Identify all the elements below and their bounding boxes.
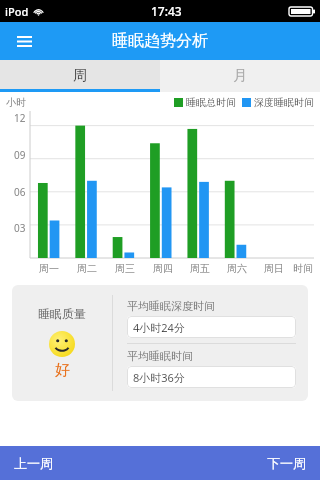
staticText: iPod	[5, 4, 29, 19]
staticText: 周二	[77, 262, 97, 275]
staticText: 上一周	[14, 455, 53, 471]
staticText: 睡眠趋势分析	[112, 31, 208, 51]
staticText: 好	[55, 361, 70, 380]
button[interactable]: 下一周	[160, 446, 320, 480]
button[interactable]: Menu	[8, 25, 40, 57]
button[interactable]: 8小时36分	[127, 366, 296, 388]
staticText: 4小时24分	[133, 320, 185, 335]
staticText: 睡眠质量	[38, 306, 86, 321]
staticText: 深度睡眠时间	[254, 96, 314, 109]
button[interactable]: 月	[160, 60, 320, 92]
staticText: 周日	[264, 262, 284, 275]
button[interactable]: 上一周	[0, 446, 160, 480]
staticText: 周一	[39, 262, 59, 275]
staticText: 06	[14, 185, 26, 199]
staticText: 睡眠总时间	[186, 96, 236, 109]
staticText: 月	[233, 67, 247, 85]
staticText: 12	[14, 111, 26, 125]
staticText: 09	[14, 148, 26, 162]
staticText: 周五	[190, 262, 210, 275]
staticText: 平均睡眠时间	[127, 349, 193, 363]
button[interactable]: 4小时24分	[127, 316, 296, 338]
staticText: 周三	[115, 262, 135, 275]
staticText: 时间	[293, 262, 313, 275]
staticText: 周六	[227, 262, 247, 275]
staticText: 小时	[6, 96, 26, 109]
staticText: 周四	[153, 262, 173, 275]
staticText: 8小时36分	[133, 370, 185, 385]
staticText: 周	[73, 67, 87, 85]
staticText: 03	[14, 221, 26, 235]
staticText: 17:43	[151, 3, 182, 19]
button[interactable]: 周	[0, 60, 160, 92]
staticText: 平均睡眠深度时间	[127, 299, 215, 313]
staticText: 下一周	[267, 455, 306, 471]
